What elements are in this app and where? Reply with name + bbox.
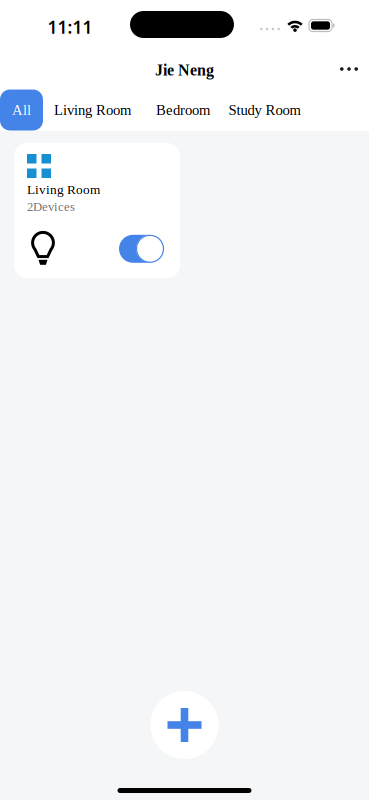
staticText: Living Room <box>27 182 100 197</box>
staticText: 2Devices <box>27 200 75 214</box>
staticText: All <box>12 102 31 118</box>
staticText: Bedroom <box>156 102 210 118</box>
button[interactable]: Bedroom <box>142 89 224 130</box>
button[interactable]: Living Room <box>43 89 142 130</box>
button[interactable]: All <box>0 89 43 130</box>
button[interactable]: Living Room <box>14 143 180 278</box>
button[interactable]: More <box>334 57 364 81</box>
staticText: Study Room <box>228 102 300 118</box>
button[interactable]: Study Room <box>224 89 305 130</box>
button[interactable]: Power <box>119 235 164 263</box>
staticText: 11:11 <box>47 15 92 38</box>
button[interactable]: Add device <box>150 691 218 759</box>
staticText: Living Room <box>54 102 131 118</box>
staticText: Jie Neng <box>155 61 214 79</box>
